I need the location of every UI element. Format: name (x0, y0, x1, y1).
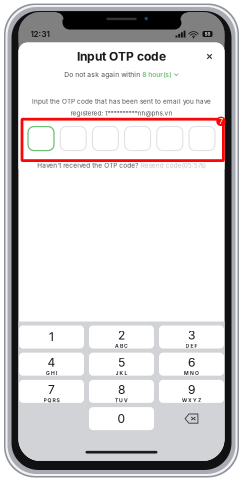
staticText: T U V (115, 397, 128, 403)
staticText: 6 (188, 355, 195, 370)
staticText: Input the OTP code that has been sent to… (32, 98, 211, 105)
staticText: 8 hour(s) (142, 70, 171, 79)
staticText: 5 (118, 355, 125, 370)
staticText: P Q R S (43, 397, 59, 403)
button[interactable]: Delete (159, 407, 224, 430)
button[interactable]: 0 (89, 407, 154, 430)
staticText: 7 (48, 382, 55, 397)
button[interactable]: Do not ask again within (64, 70, 179, 79)
button[interactable]: 7 (19, 380, 84, 403)
button[interactable]: Resend code(05:57s) (141, 162, 206, 169)
staticText: M N O (184, 370, 199, 376)
staticText: Input OTP code (77, 49, 166, 64)
staticText: 12:31 (30, 29, 49, 39)
staticText: 0 (117, 411, 125, 426)
button[interactable]: 4 (19, 353, 84, 376)
button[interactable]: 9 (159, 380, 224, 403)
staticText: Do not ask again within (64, 70, 142, 79)
button[interactable]: 6 (159, 353, 224, 376)
button[interactable]: 3 (159, 325, 224, 348)
staticText: W X Y Z (182, 397, 201, 403)
staticText: J K L (115, 370, 127, 376)
staticText: 3 (188, 328, 195, 342)
staticText: 2 (118, 328, 125, 342)
button[interactable]: 8 (89, 380, 154, 403)
button[interactable]: 5 (89, 353, 154, 376)
staticText: Haven't received the OTP code? (37, 162, 138, 169)
staticText: 4 (47, 355, 55, 370)
staticText: 8 (118, 382, 125, 397)
button[interactable]: 2 (89, 325, 154, 348)
staticText: registered: t**********nh@phs.vn (70, 109, 172, 117)
staticText: 7 (219, 117, 223, 126)
button[interactable]: Close (200, 47, 218, 65)
staticText: Resend code(05:57s) (141, 162, 206, 169)
staticText: 9 (188, 382, 195, 397)
staticText: A B C (115, 343, 128, 349)
staticText: 88 (204, 31, 210, 37)
button[interactable]: 1 (19, 325, 84, 348)
staticText: D E F (185, 343, 197, 349)
staticText: G H I (46, 370, 57, 376)
staticText: 1 (49, 330, 54, 344)
